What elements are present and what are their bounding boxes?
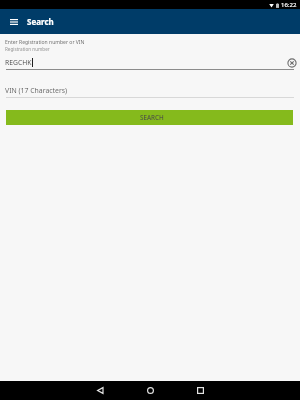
staticText: SEARCH (140, 113, 164, 122)
staticText: Search (27, 16, 54, 27)
staticText: Registration number (5, 46, 50, 52)
staticText: REGCHK (5, 58, 32, 67)
staticText: VIN (17 Characters) (5, 86, 68, 95)
button[interactable]: VIN input field (6, 79, 294, 98)
button[interactable]: Open navigation menu (0, 9, 28, 34)
button[interactable]: Recent apps (186, 381, 214, 400)
staticText: Enter Registration number or VIN (5, 39, 85, 46)
button[interactable]: SEARCH (6, 110, 293, 125)
button[interactable]: Back (86, 381, 114, 400)
button[interactable]: Registration number input field (6, 44, 294, 70)
staticText: 16:22 (281, 1, 297, 9)
button[interactable]: Clear text (284, 55, 299, 70)
button[interactable]: Home (136, 381, 164, 400)
